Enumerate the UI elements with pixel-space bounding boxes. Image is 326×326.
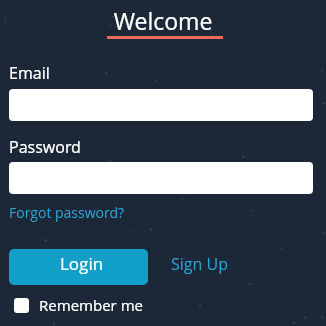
staticText: Password xyxy=(9,136,81,158)
button[interactable] xyxy=(14,298,29,313)
button[interactable]: Sign Up xyxy=(171,253,229,275)
staticText: Email xyxy=(9,62,50,84)
staticText: Welcome xyxy=(0,5,326,36)
staticText: Remember me xyxy=(39,295,144,315)
button[interactable]: Login xyxy=(9,249,148,285)
button[interactable] xyxy=(9,89,313,121)
button[interactable]: Forgot password? xyxy=(9,203,125,222)
button[interactable] xyxy=(9,162,313,194)
staticText: Login xyxy=(60,252,104,275)
